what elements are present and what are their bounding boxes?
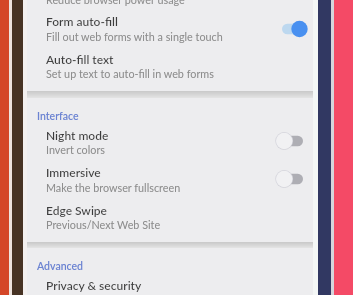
staticText: Set up text to auto-fill in web forms	[46, 67, 214, 80]
staticText: Interface	[37, 110, 79, 123]
button[interactable]	[27, 189, 313, 226]
button[interactable]	[27, 38, 313, 75]
button[interactable]: Immersive toggle	[276, 167, 310, 191]
staticText: Invert colors	[46, 143, 105, 156]
button[interactable]	[27, 151, 313, 188]
staticText: Previous/Next Web Site	[46, 218, 161, 231]
staticText: Make the browser fullscreen	[46, 181, 181, 194]
staticText: Fill out web forms with a single touch	[46, 30, 223, 43]
staticText: Privacy & security	[46, 278, 142, 292]
staticText: Night mode	[46, 128, 109, 142]
staticText: Advanced	[37, 260, 83, 273]
button[interactable]	[27, 0, 313, 37]
button[interactable]	[27, 264, 313, 295]
button[interactable]: Night mode toggle	[276, 129, 310, 153]
staticText: Form auto-fill	[46, 14, 118, 28]
staticText: Auto-fill text	[46, 52, 114, 66]
button[interactable]: Form auto-fill toggle	[276, 17, 310, 41]
staticText: Immersive	[46, 165, 101, 179]
staticText: Reduce browser power usage	[46, 0, 185, 6]
button[interactable]	[27, 114, 313, 151]
staticText: Edge Swipe	[46, 203, 107, 217]
